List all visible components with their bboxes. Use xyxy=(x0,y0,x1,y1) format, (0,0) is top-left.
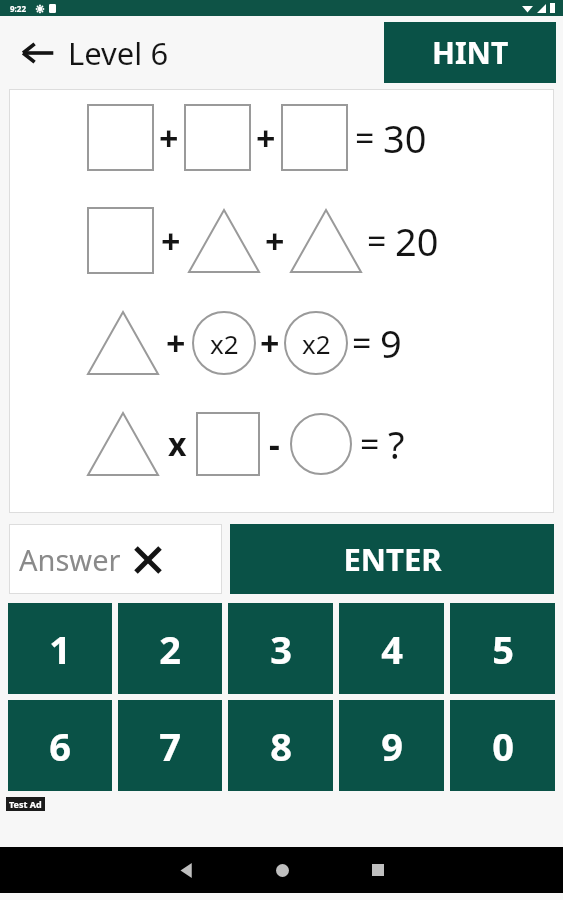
staticText: Level 6 xyxy=(68,32,169,74)
button[interactable]: Answer xyxy=(9,524,222,594)
staticText: 6 xyxy=(49,720,71,772)
staticText: 0 xyxy=(492,720,514,772)
staticText: 4 xyxy=(381,623,403,675)
staticText: 30 xyxy=(383,112,427,164)
button[interactable]: 7 xyxy=(118,700,222,791)
staticText: 8 xyxy=(270,720,292,772)
staticText: = xyxy=(352,320,372,366)
other: Back xyxy=(18,33,58,73)
button[interactable]: 8 xyxy=(228,700,333,791)
staticText: - xyxy=(269,421,280,467)
staticText: 2 xyxy=(159,623,181,675)
staticText: 9:22 xyxy=(10,3,26,14)
staticText: + xyxy=(166,320,186,366)
staticText: = xyxy=(355,115,375,161)
staticText: + xyxy=(159,115,179,161)
other: Clear answer xyxy=(131,543,165,577)
button[interactable]: 3 xyxy=(228,603,333,694)
button[interactable]: HINT xyxy=(384,22,556,83)
button[interactable]: 1 xyxy=(8,603,112,694)
staticText: 20 xyxy=(395,215,439,267)
staticText: HINT xyxy=(432,32,509,73)
staticText: = xyxy=(360,421,380,467)
button[interactable]: Recent apps xyxy=(354,847,402,893)
staticText: 9 xyxy=(380,317,402,369)
staticText: x xyxy=(168,422,187,466)
button[interactable]: ENTER xyxy=(230,524,554,594)
staticText: + xyxy=(265,218,285,264)
staticText: Answer xyxy=(19,540,121,579)
button[interactable]: 6 xyxy=(8,700,112,791)
button[interactable]: Back xyxy=(162,847,210,893)
staticText: Test Ad xyxy=(9,798,42,810)
button[interactable]: 5 xyxy=(450,603,555,694)
staticText: = xyxy=(367,218,387,264)
button[interactable]: 0 xyxy=(450,700,555,791)
button[interactable]: 2 xyxy=(118,603,222,694)
staticText: ENTER xyxy=(343,538,442,580)
staticText: + xyxy=(260,320,280,366)
button[interactable]: 4 xyxy=(339,603,444,694)
staticText: 7 xyxy=(159,720,181,772)
staticText: ? xyxy=(388,418,405,470)
staticText: + xyxy=(256,115,276,161)
staticText: 1 xyxy=(49,623,71,675)
button[interactable]: Back xyxy=(12,26,175,80)
button[interactable]: Home xyxy=(258,847,306,893)
staticText: 3 xyxy=(270,623,292,675)
staticText: x2 xyxy=(210,326,239,361)
staticText: + xyxy=(161,218,181,264)
button[interactable]: 9 xyxy=(339,700,444,791)
staticText: x2 xyxy=(302,326,331,361)
staticText: 5 xyxy=(492,623,514,675)
staticText: 9 xyxy=(381,720,403,772)
